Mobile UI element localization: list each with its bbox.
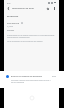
button[interactable]: More options — [52, 6, 57, 11]
button[interactable]: Back — [6, 6, 11, 11]
staticText: Información de error — [12, 7, 34, 10]
staticText: Error en el registro de aplicación — [11, 75, 43, 78]
staticText: ahora — [52, 75, 57, 77]
staticText: 2,4 GHz — [7, 25, 14, 27]
staticText: Toca para consultar más información sobr… — [11, 79, 52, 83]
staticText: El dispositivo no ha podido conectarse a… — [7, 34, 56, 38]
button[interactable]: Error en el registro de aplicación — [4, 73, 59, 87]
staticText: Se ha producido un error interno del sis… — [7, 40, 43, 42]
staticText: Frecuencia — [7, 21, 20, 24]
staticText: Bluetooth — [7, 14, 19, 17]
staticText: 9:41 — [7, 2, 11, 4]
staticText: Detalles — [7, 29, 15, 32]
button[interactable]: Search — [45, 6, 50, 11]
